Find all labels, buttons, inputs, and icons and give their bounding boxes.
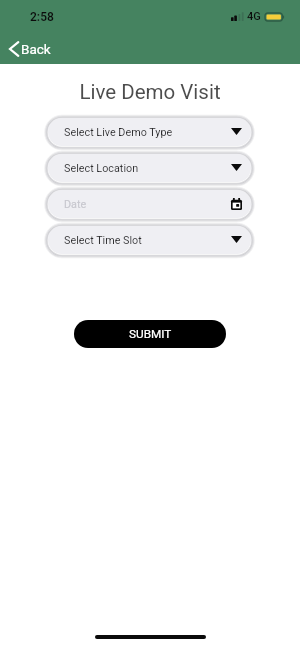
button[interactable]: SUBMIT <box>74 320 226 348</box>
staticText: SUBMIT <box>129 327 172 341</box>
other: Back <box>9 41 19 57</box>
button[interactable]: Back <box>0 39 63 59</box>
other: Open Select Time Slot options <box>231 236 242 243</box>
staticText: Back <box>21 41 51 57</box>
button[interactable]: Select Location <box>48 154 251 182</box>
staticText: Select Time Slot <box>64 234 142 247</box>
other: Pick date <box>231 198 242 210</box>
staticText: 2:58 <box>30 10 54 24</box>
button[interactable]: Select Time Slot <box>48 226 251 254</box>
staticText: Date <box>64 198 87 211</box>
other: Open Select Live Demo Type options <box>231 128 242 135</box>
button[interactable]: Date <box>48 190 251 218</box>
staticText: Live Demo Visit <box>0 80 300 104</box>
staticText: Select Live Demo Type <box>64 126 173 139</box>
button[interactable]: Select Live Demo Type <box>48 118 251 146</box>
staticText: 4G <box>247 10 261 23</box>
other: Open Select Location options <box>231 164 242 171</box>
staticText: Select Location <box>64 162 139 175</box>
